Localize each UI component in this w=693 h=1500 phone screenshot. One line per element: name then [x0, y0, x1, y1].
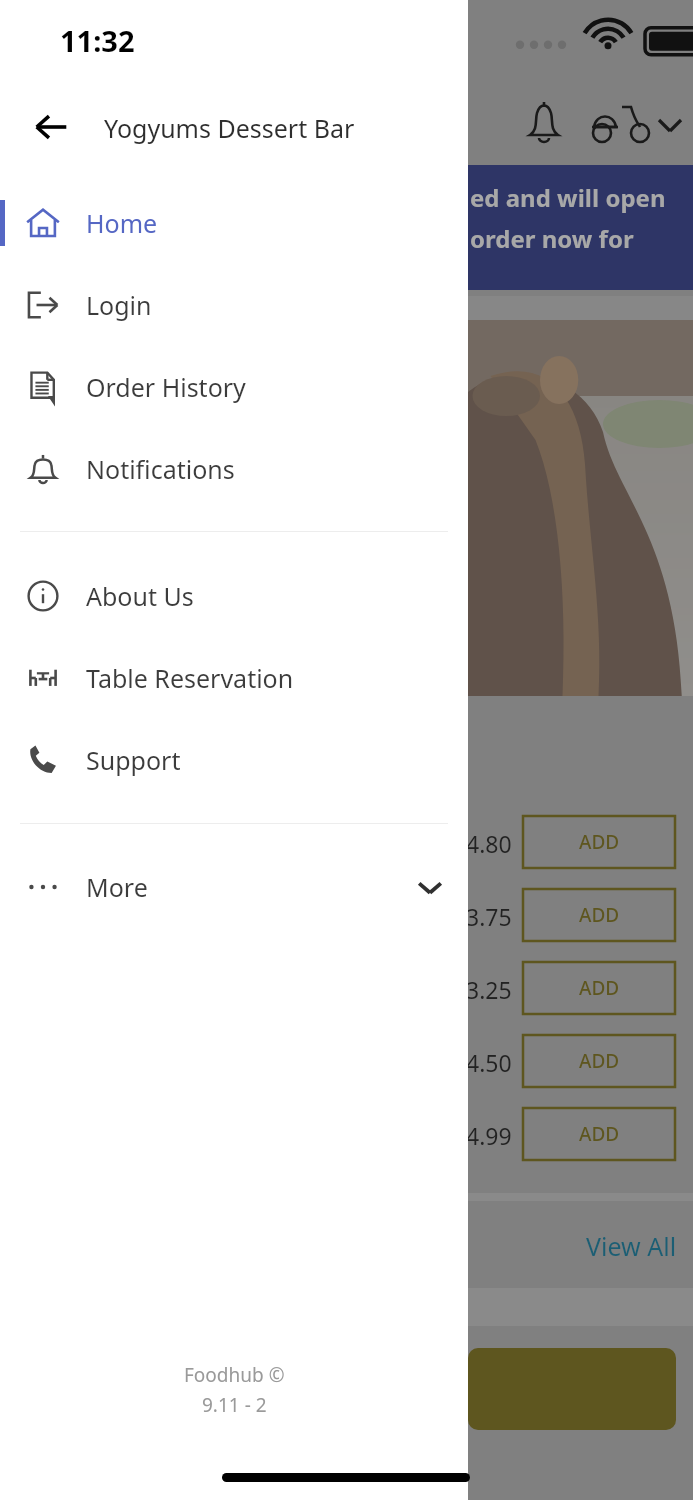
button[interactable]: View All: [586, 1229, 677, 1263]
staticText: 11:32: [60, 21, 135, 60]
staticText: ed and will open: [470, 181, 666, 214]
button[interactable]: Notifications: [0, 446, 468, 492]
staticText: Foodhub ©: [184, 1362, 285, 1388]
staticText: 3.25: [466, 974, 512, 1005]
staticText: ADD: [579, 902, 620, 928]
staticText: 9.11 - 2: [202, 1392, 267, 1418]
staticText: 4.99: [466, 1120, 512, 1151]
button[interactable]: ADD: [523, 1108, 675, 1160]
staticText: ADD: [579, 829, 620, 855]
staticText: ADD: [579, 1048, 620, 1074]
button[interactable]: More: [0, 862, 468, 912]
staticText: 4.50: [466, 1047, 512, 1078]
button[interactable]: [468, 1348, 676, 1430]
button[interactable]: Login: [0, 282, 468, 328]
staticText: 4.80: [466, 828, 512, 859]
staticText: order now for: [470, 222, 634, 255]
button[interactable]: ADD: [523, 816, 675, 868]
button[interactable]: About Us: [0, 573, 468, 619]
staticText: Order History: [86, 370, 246, 404]
staticText: About Us: [86, 579, 194, 613]
button[interactable]: Table Reservation: [0, 655, 468, 701]
button[interactable]: ADD: [523, 1035, 675, 1087]
staticText: Yogyums Dessert Bar: [104, 111, 355, 145]
staticText: 3.75: [466, 901, 512, 932]
staticText: Notifications: [86, 452, 235, 486]
button[interactable]: Support: [0, 737, 468, 783]
staticText: ADD: [579, 1121, 620, 1147]
staticText: More: [86, 870, 148, 904]
staticText: Home: [86, 206, 158, 240]
button[interactable]: Back: [22, 98, 80, 156]
button[interactable]: ADD: [523, 962, 675, 1014]
staticText: ADD: [579, 975, 620, 1001]
staticText: Support: [86, 743, 181, 777]
button[interactable]: Home: [0, 200, 468, 246]
staticText: Login: [86, 288, 152, 322]
button[interactable]: Order History: [0, 364, 468, 410]
button[interactable]: ADD: [523, 889, 675, 941]
staticText: Table Reservation: [86, 661, 294, 695]
